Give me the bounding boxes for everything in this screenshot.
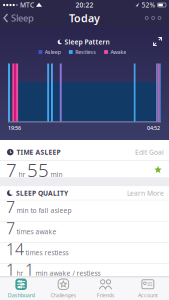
button[interactable]: Learn More [127,189,164,197]
staticText: Restless [75,48,96,56]
button[interactable]: Goal met [154,166,169,174]
staticText: Dashboard [8,292,35,299]
staticText: 52% [141,1,155,9]
staticText: Asleep [45,48,61,56]
staticText: times awake [16,227,56,236]
staticText: min awake / restless [35,269,100,278]
staticText: Sleep Pattern [64,38,109,46]
staticText: 7 [6,196,15,217]
button[interactable]: Expand chart [148,32,166,50]
staticText: 19:56 [8,124,21,132]
staticText: 1 [25,259,34,280]
staticText: Awake [110,48,126,56]
staticText: MTC [20,1,34,9]
button[interactable]: Account [127,277,169,300]
staticText: min [50,170,62,179]
staticText: 7 [6,157,17,182]
staticText: Today [69,11,100,25]
staticText: Challenges [50,292,76,299]
staticText: SLEEP QUALITY [16,189,68,197]
staticText: Edit Goal [135,148,164,157]
staticText: hr [18,170,25,179]
staticText: hr [16,269,23,278]
button[interactable]: Friends [84,277,127,300]
staticText: min to fall asleep [16,206,71,215]
button[interactable]: Pages [145,16,169,19]
staticText: 1 [6,259,15,280]
staticText: 14 [6,238,24,260]
button[interactable]: Back [0,12,34,24]
button[interactable]: Challenges [42,277,84,300]
staticText: Sleep [11,12,34,24]
button[interactable]: Edit Goal [135,148,164,157]
staticText: times restless [25,248,68,257]
staticText: TIME ASLEEP [16,148,60,157]
staticText: 20:22 [75,1,93,9]
staticText: Friends [97,292,115,299]
staticText: Account [138,292,158,299]
staticText: 55 [27,157,49,182]
staticText: 04:52 [147,124,160,132]
staticText: 7 [6,217,15,238]
staticText: Learn More [127,189,164,197]
button[interactable]: Dashboard [0,277,42,300]
